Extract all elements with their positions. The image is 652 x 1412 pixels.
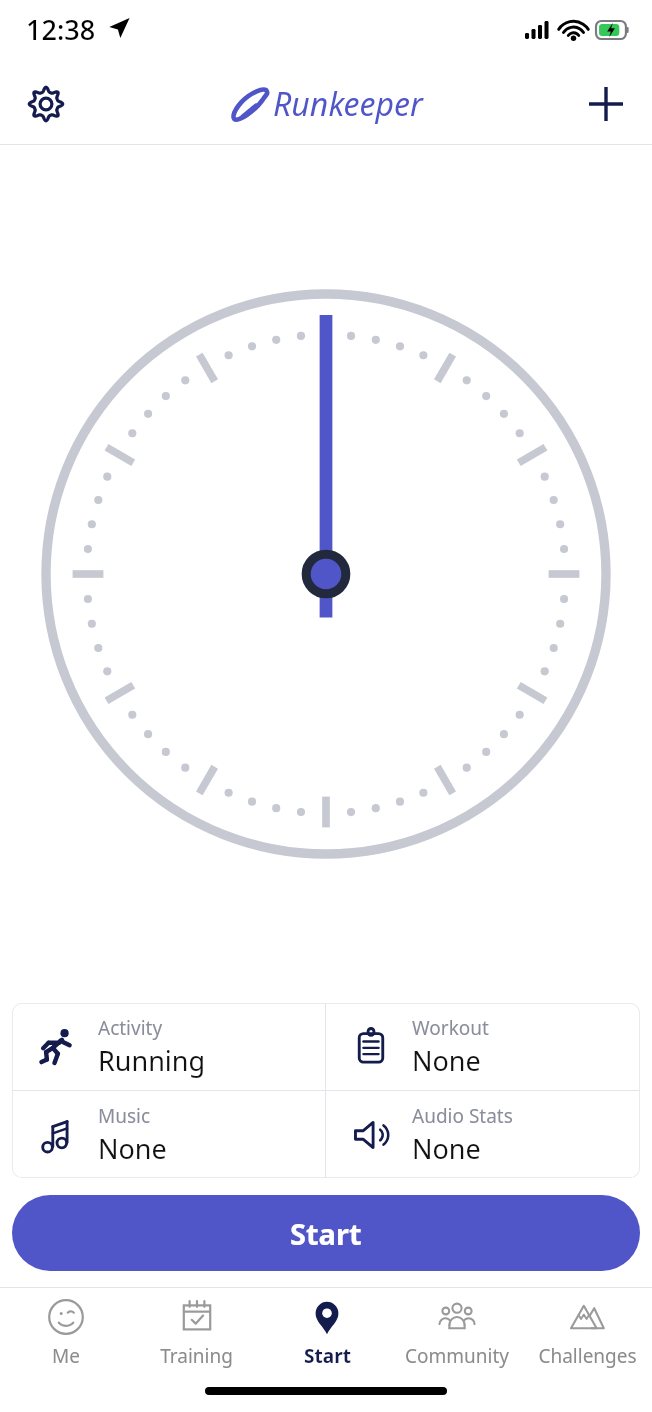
button[interactable]: Me	[0, 1288, 131, 1378]
staticText: None	[412, 1042, 481, 1079]
button[interactable]: Community	[392, 1288, 522, 1378]
button[interactable]: Audio Stats	[326, 1091, 640, 1178]
button[interactable]: Workout	[326, 1003, 640, 1090]
button[interactable]: Start	[12, 1195, 640, 1271]
staticText: None	[98, 1130, 167, 1167]
button[interactable]: Training	[131, 1288, 262, 1378]
staticText: Audio Stats	[412, 1103, 513, 1129]
staticText: Runkeeper	[273, 82, 423, 126]
staticText: Running	[98, 1042, 206, 1079]
staticText: Activity	[98, 1015, 163, 1041]
staticText: Start	[290, 1214, 362, 1253]
staticText: Challenges	[538, 1343, 637, 1369]
staticText: Music	[98, 1103, 151, 1129]
button[interactable]: Start	[262, 1288, 392, 1378]
staticText: Workout	[412, 1015, 489, 1041]
staticText: Me	[52, 1343, 80, 1369]
button[interactable]: Challenges	[522, 1288, 652, 1378]
staticText: Training	[160, 1343, 233, 1369]
staticText: 12:38	[26, 11, 96, 48]
button[interactable]: Music	[12, 1091, 325, 1178]
staticText: None	[412, 1130, 481, 1167]
button[interactable]: Settings	[16, 74, 76, 134]
staticText: Community	[405, 1343, 509, 1369]
button[interactable]: Add activity	[576, 74, 636, 134]
staticText: Start	[304, 1343, 351, 1369]
button[interactable]: Activity	[12, 1003, 325, 1090]
